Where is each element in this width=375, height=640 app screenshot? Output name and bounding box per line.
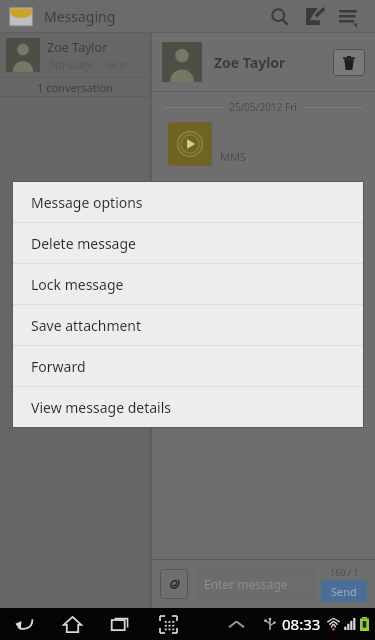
button[interactable]: Recents bbox=[96, 608, 144, 640]
staticText: Enter message bbox=[204, 576, 288, 592]
button[interactable]: Home bbox=[48, 608, 96, 640]
staticText: Forward bbox=[31, 357, 86, 376]
staticText: Zoe Taylor bbox=[47, 39, 108, 56]
staticText: Message options bbox=[31, 193, 143, 212]
button[interactable]: Forward bbox=[13, 346, 363, 386]
staticText: (No subje… bbox=[47, 58, 103, 72]
button[interactable]: Attach bbox=[160, 569, 188, 599]
button[interactable]: Save attachment bbox=[13, 305, 363, 345]
button[interactable]: Lock message bbox=[13, 264, 363, 304]
staticText: 160 / 1 bbox=[330, 566, 359, 578]
button[interactable]: Back bbox=[0, 608, 48, 640]
staticText: 1 conversation bbox=[37, 80, 113, 95]
staticText: 08:33 bbox=[282, 614, 321, 634]
staticText: Send bbox=[331, 584, 357, 599]
button[interactable]: Play attachment bbox=[168, 122, 212, 166]
button[interactable]: Message options bbox=[13, 182, 363, 222]
button[interactable]: Search bbox=[263, 0, 297, 33]
staticText: 25/05/2012 Fri bbox=[224, 100, 303, 114]
staticText: Zoe Taylor bbox=[214, 53, 286, 72]
staticText: Messaging bbox=[44, 7, 116, 26]
button[interactable]: View message details bbox=[13, 387, 363, 427]
button[interactable]: Delete bbox=[333, 49, 365, 76]
button[interactable]: New message bbox=[297, 0, 331, 33]
staticText: View message details bbox=[31, 398, 172, 417]
staticText: 08:31 bbox=[107, 60, 128, 71]
staticText: MMS bbox=[220, 149, 246, 164]
staticText: Delete message bbox=[31, 234, 136, 253]
button[interactable]: More options bbox=[331, 0, 365, 33]
staticText: Lock message bbox=[31, 275, 124, 294]
button[interactable]: Enter message bbox=[196, 568, 314, 600]
button[interactable]: Zoe Taylor bbox=[0, 33, 150, 77]
button[interactable]: Delete message bbox=[13, 223, 363, 263]
button[interactable]: Expand status bar bbox=[214, 608, 258, 640]
button[interactable]: Screenshot bbox=[144, 608, 192, 640]
button[interactable]: Send bbox=[321, 580, 367, 602]
staticText: Save attachment bbox=[31, 316, 142, 335]
